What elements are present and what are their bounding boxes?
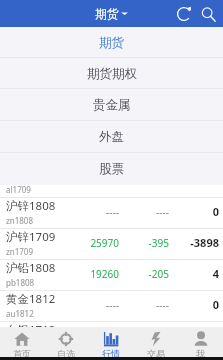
button[interactable]: 期货期权 (0, 58, 223, 89)
button[interactable]: 期货 (0, 27, 223, 58)
staticText: 首页 (13, 348, 31, 357)
button[interactable]: 白银1712 (0, 322, 223, 327)
button[interactable]: 我 (178, 327, 223, 357)
button[interactable]: Refresh (172, 2, 196, 26)
staticText: 沪锌1709 (6, 229, 56, 245)
staticText: 0 (169, 204, 219, 219)
button[interactable]: 交易 (133, 327, 178, 357)
staticText: -395 (119, 236, 169, 250)
staticText: ---- (119, 298, 169, 312)
staticText: 交易 (147, 348, 165, 357)
staticText: 我 (196, 348, 205, 357)
staticText: -3898 (169, 235, 219, 250)
button[interactable]: 外盘 (0, 121, 223, 153)
staticText: 行情 (102, 348, 120, 357)
button[interactable]: 股票 (0, 153, 223, 185)
staticText: 外盘 (99, 129, 124, 145)
staticText: pb1808 (6, 277, 35, 288)
staticText: -205 (119, 267, 169, 281)
button[interactable]: Search (196, 2, 220, 26)
staticText: 4 (169, 266, 219, 281)
staticText: 黄金1812 (6, 291, 56, 307)
staticText: 沪锌1808 (6, 198, 56, 214)
button[interactable]: 沪锌1808 (0, 198, 223, 229)
staticText: 沪铅1808 (6, 260, 56, 276)
staticText: ---- (119, 205, 169, 219)
staticText: 25970 (69, 236, 119, 250)
staticText: au1812 (6, 308, 34, 319)
button[interactable]: 贵金属 (0, 89, 223, 121)
staticText: 19260 (69, 267, 119, 281)
staticText: 股票 (99, 161, 124, 177)
staticText: zn1808 (6, 215, 34, 226)
staticText: 白银1712 (6, 322, 56, 327)
staticText: 0 (169, 297, 219, 312)
button[interactable]: 沪锌1709 (0, 229, 223, 260)
staticText: 自选 (57, 348, 75, 357)
staticText: 期货期权 (87, 66, 137, 82)
staticText: 贵金属 (93, 97, 131, 113)
staticText: ---- (69, 205, 119, 219)
button[interactable]: 黄金1812 (0, 291, 223, 322)
button[interactable]: 行情 (88, 327, 133, 357)
staticText: zn1709 (6, 246, 34, 257)
button[interactable]: 首页 (0, 327, 44, 357)
staticText: 期货 (95, 6, 119, 21)
button[interactable]: al1709 (0, 185, 223, 198)
staticText: ---- (69, 298, 119, 312)
staticText: 期货 (99, 35, 124, 51)
button[interactable]: 自选 (44, 327, 88, 357)
staticText: al1709 (6, 184, 31, 195)
button[interactable]: 沪铅1808 (0, 260, 223, 291)
